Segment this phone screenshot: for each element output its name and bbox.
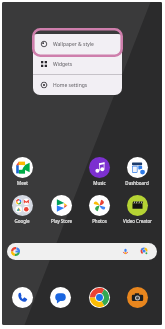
staticText: Music	[93, 180, 106, 186]
button[interactable]: Widgets	[33, 54, 122, 74]
staticText: Home settings	[53, 82, 88, 89]
staticText: Widgets	[53, 61, 73, 68]
button[interactable]: Wallpaper & style	[32, 28, 123, 57]
button[interactable]: Google	[4, 195, 40, 224]
button[interactable]: Video Creator	[119, 195, 155, 224]
button[interactable]: Play Store	[43, 195, 79, 224]
button[interactable]: Photos	[81, 195, 117, 224]
button[interactable]: Chrome	[89, 287, 110, 308]
button[interactable]: Camera	[127, 287, 148, 308]
staticText: Meet	[17, 180, 28, 186]
staticText: Play Store	[51, 218, 72, 224]
button[interactable]: Music	[81, 157, 117, 186]
button[interactable]: Meet	[4, 157, 40, 186]
button[interactable]: Home settings	[33, 75, 122, 95]
staticText: Video Creator	[123, 218, 152, 224]
button[interactable]: Dashboard	[119, 157, 155, 186]
staticText: Wallpaper & style	[53, 41, 94, 48]
button[interactable]: Phone	[12, 287, 33, 308]
staticText: Photos	[92, 218, 107, 224]
staticText: Dashboard	[125, 180, 149, 186]
staticText: Google	[14, 218, 30, 224]
button[interactable]: Search	[7, 243, 157, 260]
button[interactable]: Wallpaper & style	[33, 34, 122, 54]
button[interactable]: Messages	[50, 287, 71, 308]
